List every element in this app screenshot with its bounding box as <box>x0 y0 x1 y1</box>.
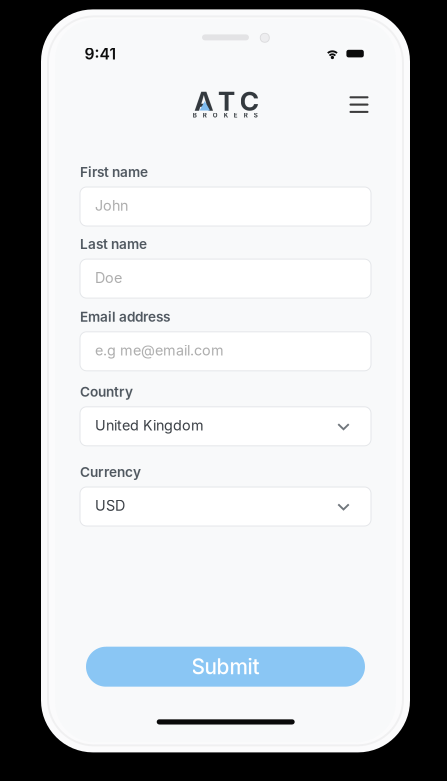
staticText: United Kingdom <box>95 417 204 434</box>
staticText: USD <box>95 497 125 514</box>
staticText: John <box>95 197 128 214</box>
staticText: E <box>234 112 238 119</box>
staticText: T <box>218 85 235 117</box>
staticText: Last name <box>80 236 147 252</box>
staticText: C <box>240 85 259 117</box>
staticText: Email address <box>80 309 170 325</box>
staticText: K <box>224 112 228 119</box>
staticText: Currency <box>80 464 141 480</box>
staticText: A <box>194 85 213 117</box>
staticText: 9:41 <box>84 44 116 63</box>
staticText: R <box>244 112 248 119</box>
staticText: Country <box>80 384 133 400</box>
staticText: e.g me@email.com <box>95 342 224 359</box>
button[interactable]: Submit <box>86 647 365 687</box>
staticText: R <box>203 112 207 119</box>
button[interactable]: Menu <box>341 87 377 123</box>
staticText: Submit <box>191 654 259 679</box>
staticText: Doe <box>95 269 122 286</box>
staticText: O <box>213 112 218 119</box>
staticText: B <box>193 112 197 119</box>
staticText: First name <box>80 164 148 180</box>
staticText: S <box>254 112 258 119</box>
